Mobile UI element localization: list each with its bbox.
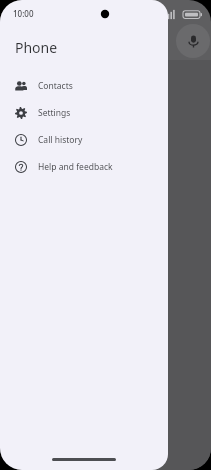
button[interactable]: Call history [0,126,168,153]
button[interactable]: Help and feedback [0,153,168,180]
button[interactable]: Contacts [0,72,168,99]
staticText: Contacts [38,80,73,92]
staticText: 10:00 [13,8,34,19]
staticText: Help and feedback [38,161,113,173]
staticText: Settings [38,107,71,119]
staticText: Phone [15,38,58,57]
button[interactable]: Settings [0,99,168,126]
button[interactable]: Voice search [176,24,210,58]
staticText: Call history [38,134,83,146]
